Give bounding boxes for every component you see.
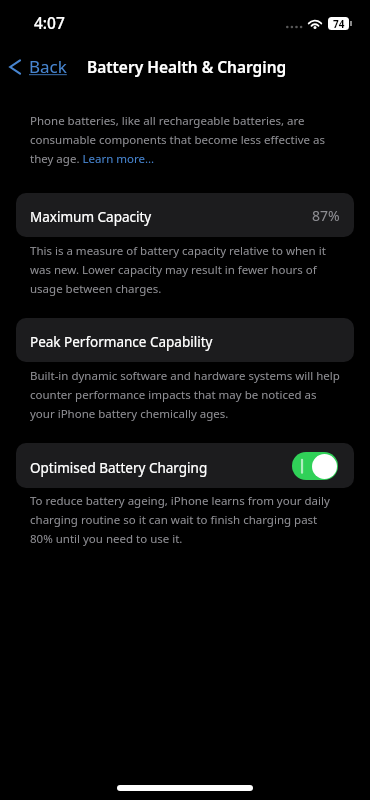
button[interactable]: Optimised Battery Charging <box>292 452 338 480</box>
button[interactable]: Peak Performance Capability <box>16 318 354 362</box>
staticText: To reduce battery ageing, iPhone learns … <box>30 493 340 546</box>
button[interactable]: Learn more <box>82 150 154 169</box>
staticText: 87% <box>312 206 340 225</box>
staticText: Built-in dynamic software and hardware s… <box>30 368 340 421</box>
staticText: Optimised Battery Charging <box>30 459 208 477</box>
staticText: Battery Health & Charging <box>87 56 287 77</box>
staticText: Maximum Capacity <box>30 208 152 226</box>
button[interactable]: Maximum Capacity <box>16 193 354 237</box>
button[interactable]: Optimised Battery Charging <box>16 443 354 488</box>
staticText: Phone batteries, like all rechargeable b… <box>30 113 340 166</box>
staticText: This is a measure of battery capacity re… <box>30 243 340 296</box>
staticText: 4:07 <box>34 12 65 33</box>
staticText: 74 <box>333 17 345 30</box>
staticText: Back <box>29 55 67 78</box>
button[interactable]: Back <box>0 52 77 81</box>
staticText: Peak Performance Capability <box>30 333 213 351</box>
